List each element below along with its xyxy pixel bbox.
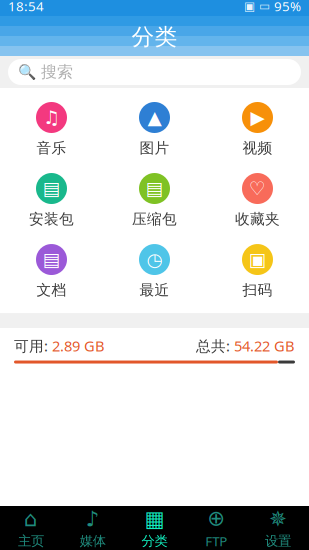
- button[interactable]: ◷: [103, 244, 206, 299]
- staticText: 可用:: [14, 336, 52, 355]
- button[interactable]: ▤: [103, 173, 206, 228]
- staticText: 文档: [36, 281, 66, 299]
- staticText: 图片: [139, 139, 169, 157]
- staticText: 54.22 GB: [234, 336, 295, 355]
- staticText: 音乐: [36, 139, 66, 157]
- staticText: 媒体: [80, 533, 106, 549]
- button[interactable]: ⊕: [185, 501, 247, 550]
- staticText: 扫码: [242, 281, 272, 299]
- staticText: ♫: [43, 107, 60, 128]
- staticText: FTP: [205, 532, 227, 550]
- staticText: 2.89 GB: [52, 336, 105, 355]
- staticText: 95%: [274, 0, 301, 15]
- staticText: ▣: [244, 0, 255, 13]
- button[interactable]: ✵: [247, 502, 309, 550]
- button[interactable]: ▤: [0, 173, 103, 228]
- staticText: 安装包: [29, 210, 74, 228]
- staticText: ▲: [147, 107, 161, 128]
- staticText: 压缩包: [132, 210, 177, 228]
- staticText: 视频: [242, 139, 272, 157]
- staticText: 18:54: [8, 0, 44, 15]
- button[interactable]: ⌂: [0, 502, 62, 550]
- staticText: 总共:: [196, 336, 234, 355]
- staticText: 设置: [265, 533, 291, 549]
- staticText: ♡: [249, 178, 266, 199]
- staticText: ⌂: [24, 507, 38, 531]
- staticText: 最近: [139, 281, 169, 299]
- staticText: 分类: [131, 23, 177, 51]
- staticText: 收藏夹: [235, 210, 280, 228]
- button[interactable]: ▲: [103, 102, 206, 157]
- button[interactable]: 🔍: [8, 59, 301, 85]
- button[interactable]: ♪: [62, 502, 124, 550]
- staticText: ⊕: [207, 506, 225, 530]
- staticText: 🔍: [18, 64, 36, 80]
- staticText: ▤: [42, 249, 60, 270]
- staticText: 主页: [18, 533, 44, 549]
- staticText: ▤: [145, 178, 163, 199]
- staticText: ✵: [269, 507, 287, 531]
- button[interactable]: ▣: [206, 244, 309, 299]
- staticText: 搜索: [41, 62, 73, 82]
- staticText: ▶: [250, 107, 264, 128]
- button[interactable]: ♫: [0, 102, 103, 157]
- staticText: ▣: [248, 249, 266, 270]
- staticText: ♪: [86, 507, 100, 531]
- staticText: ▭: [255, 0, 274, 13]
- button[interactable]: ♡: [206, 173, 309, 228]
- staticText: ▤: [42, 178, 60, 199]
- button[interactable]: ▶: [206, 102, 309, 157]
- button[interactable]: ▦: [124, 502, 185, 550]
- button[interactable]: ▤: [0, 244, 103, 299]
- staticText: ◷: [146, 249, 162, 270]
- staticText: 分类: [141, 533, 167, 549]
- staticText: ▦: [144, 507, 164, 531]
